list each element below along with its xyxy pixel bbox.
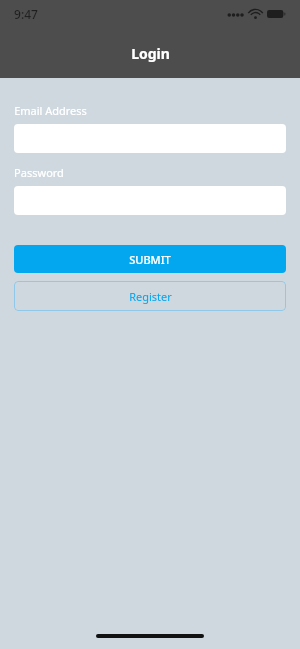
- staticText: Password: [14, 165, 64, 180]
- other: Cellular signal: [227, 10, 244, 18]
- staticText: 9:47: [14, 6, 38, 22]
- staticText: Register: [129, 289, 172, 304]
- other: Wi-Fi: [249, 9, 262, 19]
- other: Battery: [267, 9, 286, 19]
- button[interactable]: Register: [14, 281, 286, 311]
- staticText: SUBMIT: [129, 252, 171, 267]
- staticText: Email Address: [14, 103, 87, 118]
- staticText: Login: [131, 44, 170, 63]
- button[interactable]: SUBMIT: [14, 245, 286, 273]
